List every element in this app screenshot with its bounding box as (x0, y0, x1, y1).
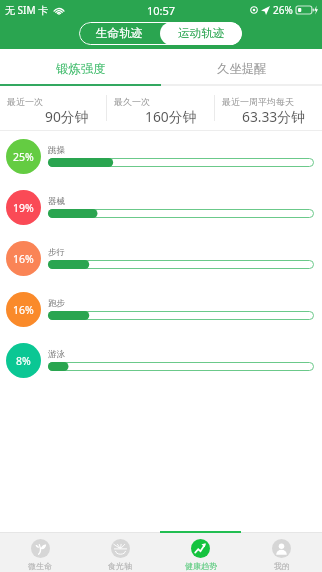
staticText: 步行 (48, 247, 65, 258)
button[interactable]: 16% (0, 233, 322, 284)
staticText: 最近一次 (7, 96, 43, 107)
button[interactable]: 久坐提醒 (161, 49, 322, 84)
staticText: 16% (13, 252, 34, 266)
staticText: 19% (13, 201, 34, 215)
staticText: 锻炼强度 (56, 61, 106, 77)
button[interactable]: 运动轨迹 (160, 22, 242, 45)
staticText: 运动轨迹 (178, 26, 225, 41)
button[interactable]: 16% (0, 284, 322, 335)
staticText: 健康趋势 (185, 561, 217, 571)
staticText: 器械 (48, 196, 65, 207)
staticText: 跳操 (48, 145, 65, 156)
button[interactable]: 食光轴 (80, 533, 160, 572)
staticText: 游泳 (48, 349, 65, 360)
staticText: 16% (13, 303, 34, 317)
button[interactable]: 19% (0, 182, 322, 233)
button[interactable]: 健康趋势 (160, 533, 241, 572)
staticText: 微生命 (28, 561, 52, 571)
staticText: 10:57 (147, 3, 176, 18)
staticText: 160分钟 (145, 107, 197, 126)
staticText: 最近一周平均每天 (222, 96, 294, 107)
staticText: 最久一次 (114, 96, 150, 107)
staticText: 25% (13, 150, 34, 164)
staticText: 生命轨迹 (96, 26, 143, 41)
button[interactable]: 微生命 (0, 533, 80, 572)
button[interactable]: 8% (0, 335, 322, 386)
staticText: 无 SIM 卡 (5, 3, 49, 17)
button[interactable]: 生命轨迹 (79, 22, 160, 45)
staticText: 63.33分钟 (242, 107, 305, 126)
staticText: 久坐提醒 (217, 61, 267, 77)
staticText: 跑步 (48, 298, 65, 309)
staticText: 食光轴 (108, 561, 132, 571)
button[interactable]: 25% (0, 131, 322, 182)
staticText: 26% (273, 3, 293, 17)
button[interactable]: 锻炼强度 (0, 49, 161, 84)
button[interactable]: 我的 (241, 533, 322, 572)
staticText: 90分钟 (45, 107, 89, 126)
staticText: 8% (16, 354, 31, 368)
staticText: 我的 (274, 561, 290, 571)
